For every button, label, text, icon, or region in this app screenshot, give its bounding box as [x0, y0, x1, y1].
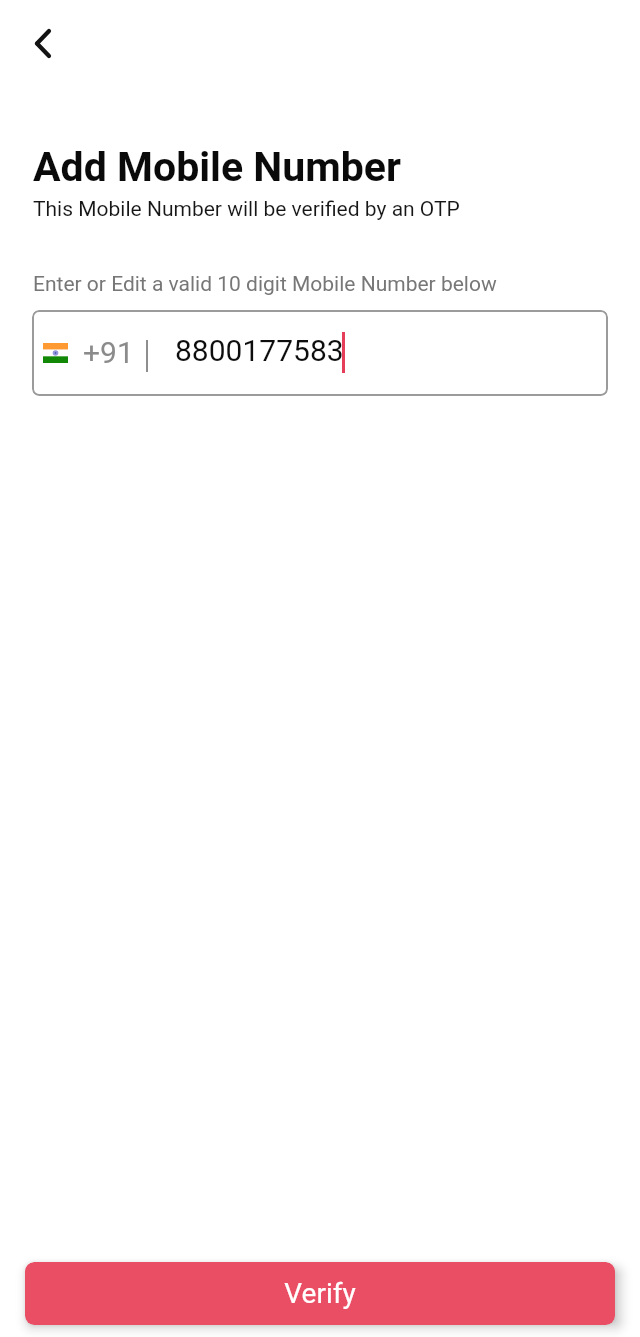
staticText: Enter or Edit a valid 10 digit Mobile Nu… — [33, 272, 497, 297]
button[interactable]: Verify — [25, 1262, 615, 1325]
staticText: +91 — [83, 335, 134, 370]
staticText: 8800177583 — [175, 333, 344, 368]
staticText: Verify — [284, 1277, 356, 1310]
staticText: Add Mobile Number — [33, 143, 401, 191]
button[interactable]: +91 — [32, 310, 608, 396]
staticText: This Mobile Number will be verified by a… — [33, 197, 460, 222]
button[interactable]: Back — [8, 8, 76, 76]
